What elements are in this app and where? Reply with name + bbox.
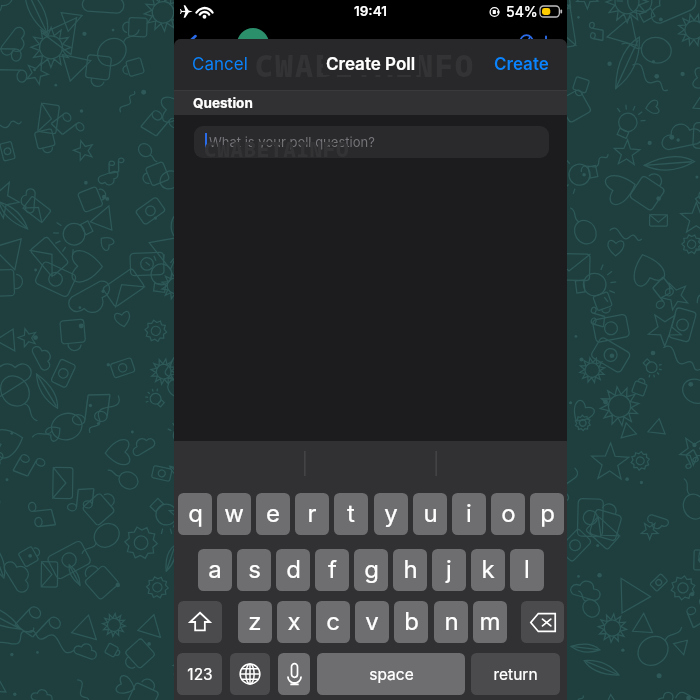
button[interactable]: v: [355, 601, 389, 643]
button[interactable]: Switch keyboard: [230, 653, 270, 695]
staticText: s: [248, 555, 261, 584]
button[interactable]: d: [276, 549, 310, 591]
staticText: e: [266, 499, 280, 528]
staticText: p: [540, 499, 555, 528]
staticText: g: [364, 555, 379, 584]
staticText: u: [423, 499, 438, 528]
staticText: 54%: [506, 3, 538, 20]
button[interactable]: space: [317, 653, 465, 695]
button[interactable]: Shift: [178, 601, 222, 643]
button[interactable]: y: [374, 493, 408, 535]
button[interactable]: Back: [180, 30, 204, 54]
button[interactable]: z: [238, 601, 272, 643]
staticText: q: [188, 499, 203, 528]
button[interactable]: p: [530, 493, 564, 535]
button[interactable]: return: [471, 653, 560, 695]
staticText: j: [446, 555, 452, 584]
staticText: c: [326, 607, 340, 636]
button[interactable]: a: [198, 549, 232, 591]
staticText: r: [307, 499, 317, 528]
staticText: l: [524, 555, 530, 584]
button[interactable]: b: [394, 601, 428, 643]
staticText: Cancel: [192, 54, 248, 75]
button[interactable]: 123: [177, 653, 222, 695]
button[interactable]: Cancel: [174, 45, 266, 84]
button[interactable]: What is your poll question?: [194, 126, 549, 158]
staticText: k: [481, 555, 495, 584]
button[interactable]: r: [295, 493, 329, 535]
button[interactable]: j: [432, 549, 466, 591]
button[interactable]: e: [256, 493, 290, 535]
staticText: space: [369, 665, 414, 684]
staticText: v: [365, 607, 379, 636]
button[interactable]: Dictate: [278, 653, 310, 695]
staticText: y: [384, 499, 398, 528]
button[interactable]: Create: [476, 45, 567, 84]
staticText: Create Poll: [326, 54, 416, 75]
button[interactable]: h: [393, 549, 427, 591]
staticText: Question: [193, 95, 253, 111]
staticText: CWABETAINFO: [204, 135, 350, 164]
staticText: x: [287, 607, 301, 636]
button[interactable]: n: [434, 601, 468, 643]
staticText: i: [466, 499, 472, 528]
button[interactable]: w: [217, 493, 251, 535]
staticText: m: [479, 607, 501, 636]
button[interactable]: q: [178, 493, 212, 535]
button[interactable]: k: [471, 549, 505, 591]
staticText: Create: [494, 54, 549, 75]
button[interactable]: u: [413, 493, 447, 535]
staticText: a: [208, 555, 222, 584]
staticText: What is your poll question?: [209, 134, 375, 150]
staticText: t: [347, 499, 355, 528]
button[interactable]: o: [491, 493, 525, 535]
button[interactable]: s: [237, 549, 271, 591]
staticText: h: [403, 555, 418, 584]
button[interactable]: c: [316, 601, 350, 643]
staticText: 19:41: [354, 3, 387, 19]
staticText: w: [224, 499, 244, 528]
button[interactable]: i: [452, 493, 486, 535]
staticText: z: [248, 607, 262, 636]
staticText: n: [444, 607, 459, 636]
button[interactable]: g: [354, 549, 388, 591]
button[interactable]: Backspace: [521, 601, 564, 643]
button[interactable]: l: [510, 549, 544, 591]
staticText: 123: [187, 665, 213, 684]
staticText: CWABETAINFO: [255, 45, 475, 86]
button[interactable]: f: [315, 549, 349, 591]
staticText: f: [328, 555, 337, 584]
button[interactable]: x: [277, 601, 311, 643]
button[interactable]: t: [334, 493, 368, 535]
button[interactable]: m: [473, 601, 507, 643]
staticText: d: [286, 555, 301, 584]
staticText: return: [493, 665, 538, 684]
staticText: WABetaInfo: [279, 38, 364, 56]
staticText: b: [404, 607, 419, 636]
staticText: o: [501, 499, 516, 528]
